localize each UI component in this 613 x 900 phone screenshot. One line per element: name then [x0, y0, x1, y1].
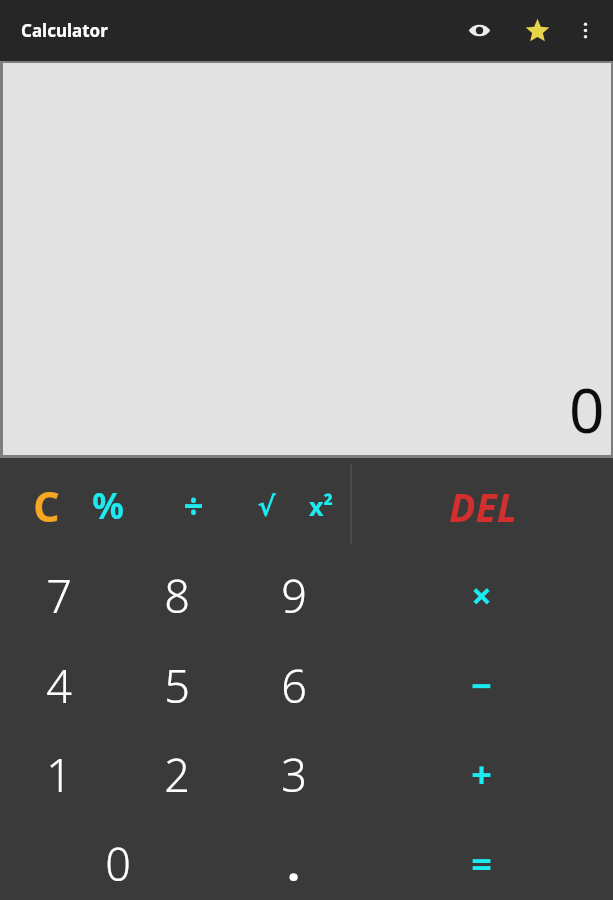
staticText: 6: [281, 655, 307, 716]
staticText: +: [471, 750, 492, 799]
button[interactable]: 3: [246, 730, 341, 819]
button[interactable]: 4: [11, 641, 106, 730]
button[interactable]: 2: [129, 730, 224, 819]
staticText: DEL: [449, 480, 517, 533]
staticText: 8: [164, 565, 190, 626]
staticText: C: [33, 478, 60, 534]
staticText: %: [92, 482, 124, 530]
button[interactable]: %: [78, 462, 138, 550]
staticText: 3: [281, 744, 307, 805]
staticText: 9: [281, 565, 307, 626]
staticText: =: [471, 839, 492, 888]
staticText: 1: [46, 744, 72, 805]
button[interactable]: Favorite: [515, 0, 559, 61]
button[interactable]: +: [363, 730, 600, 819]
staticText: x²: [309, 489, 333, 523]
button[interactable]: x²: [292, 462, 350, 550]
staticText: 2: [164, 744, 190, 805]
staticText: ×: [471, 571, 492, 620]
button[interactable]: 1: [11, 730, 106, 819]
button[interactable]: C: [8, 462, 84, 550]
button[interactable]: DEL: [352, 462, 613, 550]
staticText: Calculator: [21, 19, 108, 42]
staticText: 0: [569, 367, 605, 451]
button[interactable]: .: [246, 819, 341, 900]
staticText: −: [471, 661, 492, 710]
staticText: √: [257, 491, 276, 522]
button[interactable]: =: [363, 819, 600, 900]
button[interactable]: 9: [246, 551, 341, 640]
button[interactable]: √: [236, 462, 296, 550]
button[interactable]: 5: [129, 641, 224, 730]
staticText: 7: [46, 565, 72, 626]
button[interactable]: 8: [129, 551, 224, 640]
staticText: ÷: [183, 482, 204, 530]
button[interactable]: More options: [563, 0, 607, 61]
staticText: 4: [46, 655, 72, 716]
button[interactable]: ×: [363, 551, 600, 640]
staticText: 0: [105, 833, 131, 894]
button[interactable]: 6: [246, 641, 341, 730]
button[interactable]: Preview: [457, 0, 501, 61]
button[interactable]: 7: [11, 551, 106, 640]
button[interactable]: ÷: [160, 462, 226, 550]
staticText: 5: [164, 655, 190, 716]
button[interactable]: 0: [11, 819, 224, 900]
button[interactable]: −: [363, 641, 600, 730]
staticText: .: [287, 833, 300, 894]
